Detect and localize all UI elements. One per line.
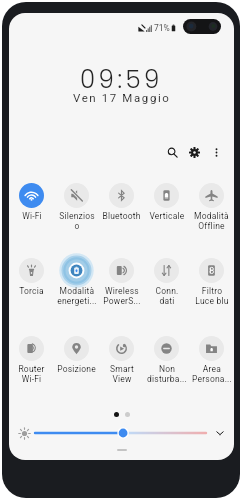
staticText: Area Persona... — [192, 364, 232, 384]
button[interactable]: Silenzios o — [54, 183, 99, 231]
button[interactable]: Settings — [186, 144, 203, 161]
button[interactable]: Wi-Fi — [9, 183, 54, 221]
button[interactable]: Smart View — [99, 336, 144, 384]
staticText: 09:59 — [80, 62, 163, 96]
button[interactable]: Verticale — [144, 183, 189, 221]
staticText: Smart View — [110, 364, 134, 384]
staticText: Conn. dati — [155, 286, 179, 306]
staticText: Verticale — [149, 211, 185, 221]
button[interactable]: Bluetooth — [99, 183, 144, 221]
button[interactable]: More options — [208, 144, 225, 161]
staticText: Posizione — [57, 364, 96, 374]
button[interactable]: Search — [164, 144, 181, 161]
staticText: Wi-Fi — [22, 211, 42, 221]
staticText: Router Wi-Fi — [18, 364, 45, 384]
button[interactable]: Expand — [213, 426, 227, 440]
button[interactable]: Posizione — [54, 336, 99, 374]
button[interactable]: Router Wi-Fi — [9, 336, 54, 384]
staticText: Ven 17 Maggio — [73, 91, 171, 104]
staticText: Torcia — [19, 286, 44, 296]
button[interactable]: Area Persona... — [189, 336, 234, 384]
button[interactable]: Filtro Luce blu — [189, 258, 234, 306]
button[interactable]: Modalità Offline — [189, 183, 234, 231]
button[interactable]: Wireless PowerS... — [99, 258, 144, 306]
button[interactable]: Torcia — [9, 258, 54, 296]
staticText: Filtro Luce blu — [195, 286, 229, 306]
button[interactable]: Non disturba... — [144, 336, 189, 384]
staticText: Modalità energeti... — [57, 286, 97, 306]
staticText: Non disturba... — [147, 364, 187, 384]
staticText: Bluetooth — [102, 211, 141, 221]
staticText: Modalità Offline — [194, 211, 229, 231]
staticText: Wireless PowerS... — [103, 286, 141, 306]
button[interactable]: Conn. dati — [144, 258, 189, 306]
staticText: 71% — [154, 23, 170, 33]
button[interactable]: Modalità energeti... — [54, 258, 99, 306]
staticText: Silenzios o — [59, 211, 95, 231]
